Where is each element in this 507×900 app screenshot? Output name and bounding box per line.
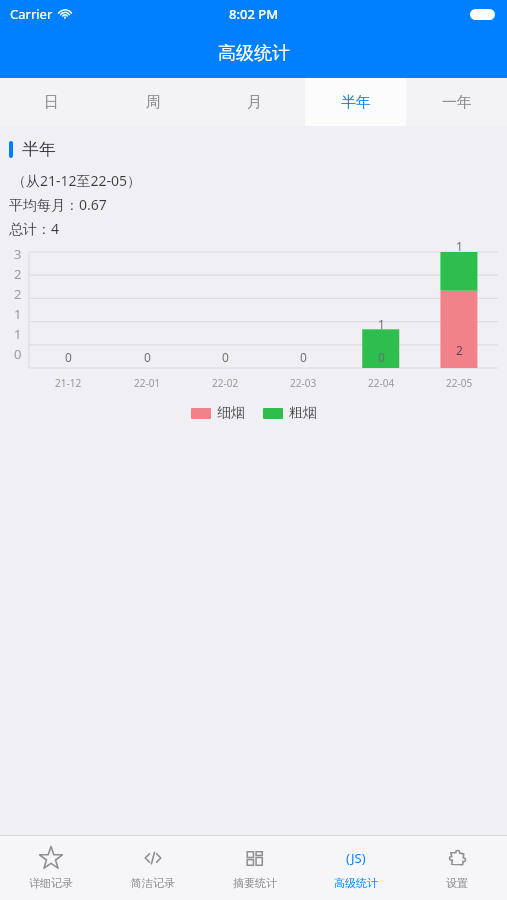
staticText: (JS)	[346, 849, 366, 867]
button[interactable]: 设置	[406, 836, 507, 900]
staticText: 一年	[442, 93, 472, 112]
staticText: 22-05	[446, 376, 473, 390]
staticText: 1	[14, 305, 22, 323]
staticText: 0	[222, 349, 229, 365]
staticText: 总计：4	[9, 219, 60, 238]
staticText: 周	[146, 93, 161, 112]
button[interactable]: 日	[0, 78, 102, 126]
button[interactable]: 周	[102, 78, 204, 126]
staticText: 日	[44, 93, 59, 112]
button[interactable]: 一年	[406, 78, 507, 126]
staticText: 8:02 PM	[229, 5, 279, 23]
staticText: 21-12	[55, 376, 82, 390]
button[interactable]: 月	[204, 78, 305, 126]
staticText: 高级统计	[218, 42, 290, 65]
staticText: （从21-12至22-05）	[12, 171, 142, 190]
staticText: Carrier	[10, 5, 53, 23]
staticText: 22-02	[212, 376, 239, 390]
staticText: 0	[14, 345, 22, 363]
staticText: 0	[300, 349, 307, 365]
button[interactable]: (JS)	[305, 836, 406, 900]
staticText: 1	[378, 316, 385, 332]
staticText: 简洁记录	[131, 876, 175, 890]
staticText: 1	[14, 325, 22, 343]
staticText: 详细记录	[29, 876, 73, 890]
staticText: 22-03	[290, 376, 317, 390]
staticText: 2	[456, 342, 463, 358]
staticText: 半年	[22, 139, 56, 160]
button[interactable]: 摘要统计	[204, 836, 305, 900]
staticText: 2	[14, 265, 22, 283]
staticText: 摘要统计	[233, 876, 277, 890]
staticText: 半年	[341, 93, 371, 112]
staticText: 22-01	[134, 376, 161, 390]
button[interactable]: 半年	[305, 78, 406, 126]
staticText: 粗烟	[289, 404, 317, 422]
staticText: 月	[247, 93, 262, 112]
staticText: 设置	[446, 876, 468, 890]
staticText: 22-04	[368, 376, 395, 390]
staticText: 平均每月：0.67	[9, 195, 107, 214]
button[interactable]: 详细记录	[0, 836, 102, 900]
staticText: 0	[65, 349, 72, 365]
staticText: 高级统计	[334, 876, 378, 890]
staticText: 0	[378, 349, 385, 365]
staticText: 3	[14, 245, 22, 263]
staticText: 1	[456, 238, 463, 254]
staticText: 2	[14, 285, 22, 303]
button[interactable]: 简洁记录	[102, 836, 204, 900]
staticText: 0	[144, 349, 151, 365]
staticText: 细烟	[217, 404, 245, 422]
